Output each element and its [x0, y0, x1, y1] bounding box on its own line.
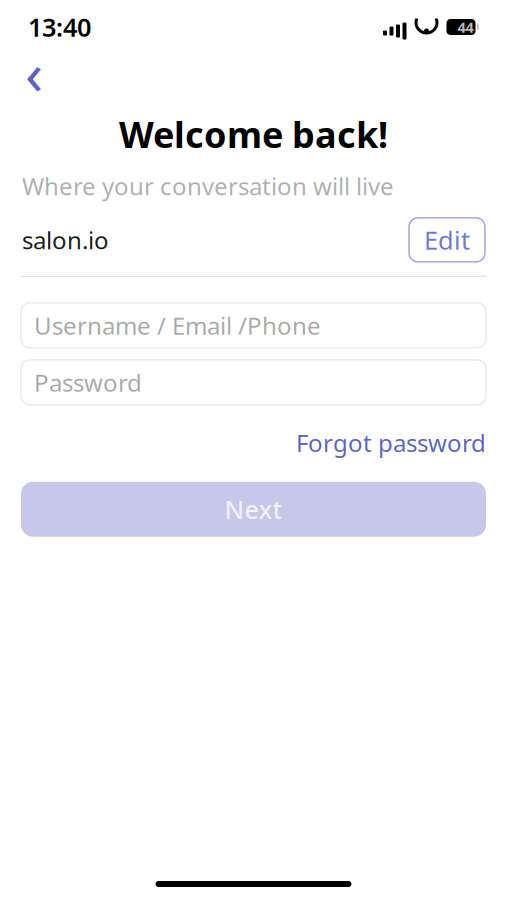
staticText: Welcome back! — [119, 110, 388, 158]
staticText: Next — [224, 492, 282, 526]
button[interactable]: Forgot password — [296, 427, 486, 459]
button[interactable]: Back — [12, 54, 56, 98]
staticText: Username / Email /Phone — [34, 309, 321, 341]
button[interactable]: Password — [21, 360, 486, 405]
staticText: 13:40 — [28, 10, 91, 44]
button[interactable]: Username / Email /Phone — [21, 303, 486, 348]
staticText: Forgot password — [296, 427, 486, 459]
button[interactable]: Edit — [409, 218, 485, 262]
staticText: Password — [34, 366, 142, 398]
staticText: salon.io — [22, 224, 109, 256]
staticText: Where your conversation will live — [22, 170, 394, 202]
staticText: Edit — [424, 223, 470, 257]
staticText: 44 — [457, 17, 473, 37]
button[interactable]: Next — [21, 482, 486, 537]
staticText: ‹ — [25, 33, 43, 111]
